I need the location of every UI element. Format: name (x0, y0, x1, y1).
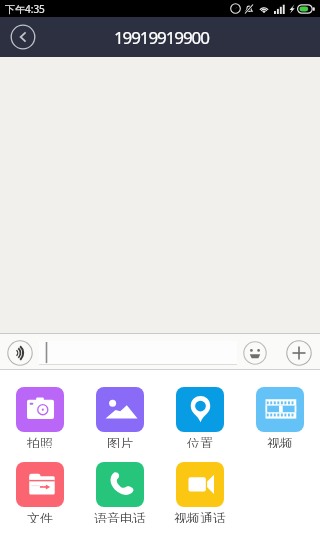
button[interactable]: 语音电话 (80, 448, 160, 523)
button[interactable]: Voice message (6, 339, 34, 367)
button[interactable]: Emoji (242, 340, 268, 366)
staticText: 图片 (107, 435, 133, 448)
button[interactable]: 拍照 (0, 373, 80, 448)
button[interactable]: Back (9, 23, 37, 51)
staticText: 视频 (267, 435, 293, 448)
button[interactable]: More (285, 339, 313, 367)
staticText: 拍照 (27, 435, 53, 448)
staticText: 位置 (187, 435, 213, 448)
staticText: 视频通话 (174, 510, 226, 523)
button[interactable]: 位置 (160, 373, 240, 448)
button[interactable]: 图片 (80, 373, 160, 448)
staticText: 语音电话 (94, 510, 146, 523)
staticText: 下午4:35 (5, 2, 45, 16)
button[interactable]: Message input (39, 341, 237, 365)
button[interactable]: 视频通话 (160, 448, 240, 523)
button[interactable]: 文件 (0, 448, 80, 523)
button[interactable]: 视频 (240, 373, 320, 448)
staticText: 文件 (27, 510, 53, 523)
staticText: 19919919900 (114, 26, 209, 49)
